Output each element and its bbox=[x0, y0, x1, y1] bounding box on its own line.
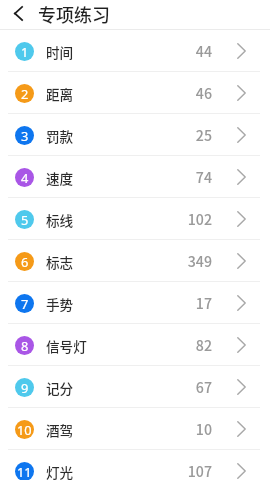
button[interactable]: 7 bbox=[0, 282, 270, 323]
staticText: 67 bbox=[195, 377, 212, 398]
staticText: 速度 bbox=[46, 168, 74, 188]
staticText: 102 bbox=[187, 209, 212, 230]
staticText: 4 bbox=[21, 169, 29, 186]
staticText: 7 bbox=[21, 295, 29, 312]
staticText: 标志 bbox=[46, 252, 74, 272]
staticText: 82 bbox=[195, 335, 212, 356]
staticText: 74 bbox=[195, 167, 212, 188]
staticText: 107 bbox=[187, 461, 212, 480]
staticText: 10 bbox=[195, 419, 212, 440]
button[interactable]: 1 bbox=[0, 30, 270, 71]
staticText: 9 bbox=[21, 379, 29, 396]
staticText: 1 bbox=[21, 43, 29, 60]
staticText: 3 bbox=[21, 127, 29, 144]
button[interactable]: 9 bbox=[0, 366, 270, 407]
staticText: 8 bbox=[21, 337, 29, 354]
staticText: 距离 bbox=[46, 84, 74, 104]
button[interactable]: Back bbox=[0, 0, 36, 29]
staticText: 46 bbox=[195, 83, 212, 104]
staticText: 349 bbox=[187, 251, 212, 272]
staticText: 2 bbox=[21, 85, 29, 102]
staticText: 专项练习 bbox=[38, 1, 110, 27]
staticText: 11 bbox=[17, 463, 32, 480]
button[interactable]: 2 bbox=[0, 72, 270, 113]
staticText: 灯光 bbox=[46, 462, 74, 480]
button[interactable]: 8 bbox=[0, 324, 270, 365]
staticText: 信号灯 bbox=[46, 336, 87, 356]
button[interactable]: 10 bbox=[0, 408, 270, 449]
staticText: 10 bbox=[17, 421, 32, 438]
staticText: 时间 bbox=[46, 42, 74, 62]
button[interactable]: 3 bbox=[0, 114, 270, 155]
staticText: 罚款 bbox=[46, 126, 74, 146]
button[interactable]: 5 bbox=[0, 198, 270, 239]
staticText: 25 bbox=[195, 125, 212, 146]
staticText: 44 bbox=[195, 41, 212, 62]
staticText: 酒驾 bbox=[46, 420, 74, 440]
staticText: 标线 bbox=[46, 210, 74, 230]
staticText: 手势 bbox=[46, 294, 74, 314]
staticText: 记分 bbox=[46, 378, 74, 398]
button[interactable]: 4 bbox=[0, 156, 270, 197]
button[interactable]: 6 bbox=[0, 240, 270, 281]
staticText: 17 bbox=[195, 293, 212, 314]
button[interactable]: 11 bbox=[0, 450, 270, 480]
staticText: 6 bbox=[21, 253, 29, 270]
staticText: 5 bbox=[21, 211, 29, 228]
